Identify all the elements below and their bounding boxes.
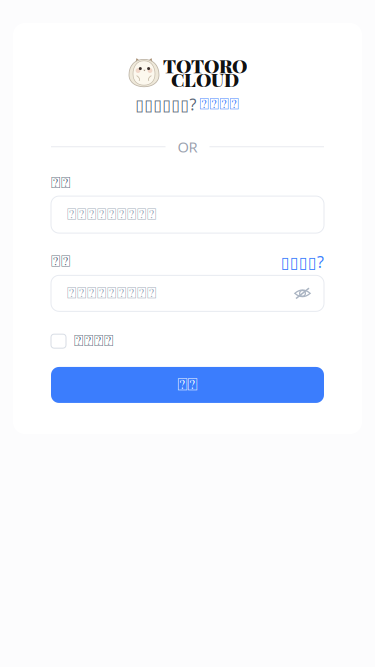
button[interactable]: ⍰⍰⍰⍰ bbox=[199, 97, 239, 112]
staticText: TOTORO bbox=[163, 53, 247, 78]
staticText: ⍰⍰ bbox=[177, 376, 197, 393]
staticText: ⍰⍰ bbox=[51, 254, 71, 269]
staticText: ⍰⍰⍰⍰ bbox=[74, 333, 114, 349]
button[interactable]: ⍰⍰⍰⍰ bbox=[51, 333, 324, 349]
staticText: OR bbox=[177, 137, 197, 156]
staticText: ⍰⍰⍰⍰⍰⍰⍰⍰⍰ bbox=[67, 285, 157, 301]
staticText: ▯▯▯▯? bbox=[281, 251, 324, 272]
staticText: ⍰⍰ bbox=[51, 175, 71, 191]
staticText: ▯▯▯▯▯▯? bbox=[135, 94, 196, 115]
button[interactable]: ▯▯▯▯? bbox=[281, 251, 324, 272]
button[interactable]: ⍰⍰ bbox=[51, 367, 324, 403]
staticText: CLOUD bbox=[171, 67, 239, 92]
staticText: ⍰⍰⍰⍰ bbox=[199, 97, 239, 112]
staticText: ⍰⍰⍰⍰⍰⍰⍰⍰⍰ bbox=[67, 207, 157, 222]
